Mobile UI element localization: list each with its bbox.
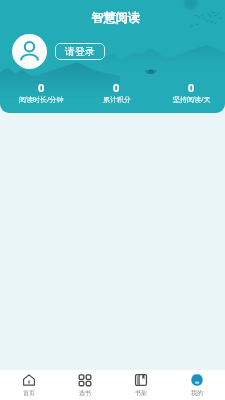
staticText: 选书 (79, 389, 91, 397)
button[interactable]: 请登录 (55, 43, 105, 60)
button[interactable]: 0 (4, 80, 79, 105)
staticText: 0 (113, 80, 120, 95)
button[interactable]: 选书 (57, 370, 113, 400)
staticText: 累计积分 (103, 95, 131, 104)
button[interactable]: 0 (79, 80, 154, 104)
button[interactable]: 首页 (0, 370, 57, 400)
staticText: 0 (38, 80, 45, 95)
staticText: 0 (188, 80, 195, 95)
staticText: 首页 (23, 389, 35, 397)
button[interactable]: 0 (154, 80, 225, 105)
staticText: 阅读时长/分钟 (19, 95, 64, 105)
button[interactable]: 我的 (169, 370, 225, 400)
staticText: 我的 (191, 389, 203, 397)
staticText: 书架 (135, 389, 147, 397)
staticText: 智慧阅读 (6, 10, 225, 25)
button[interactable]: 头像 (12, 34, 47, 69)
staticText: 坚持阅读/天 (173, 95, 211, 105)
button[interactable]: 书架 (113, 370, 169, 400)
staticText: 请登录 (65, 45, 95, 58)
